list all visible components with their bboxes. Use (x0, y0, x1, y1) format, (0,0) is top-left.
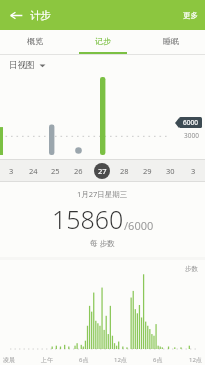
staticText: 3000 (184, 131, 199, 140)
button[interactable]: 26 (67, 159, 90, 182)
staticText: 6点 (153, 356, 163, 364)
button[interactable]: 日视图 (9, 60, 46, 71)
staticText: 日视图 (9, 60, 35, 71)
button[interactable]: 记步 (69, 30, 137, 52)
staticText: 睡眠 (163, 36, 179, 46)
button[interactable]: 概览 (0, 30, 69, 52)
staticText: 26 (74, 166, 83, 176)
staticText: 步数 (185, 265, 198, 273)
button[interactable]: 3 (0, 159, 22, 182)
staticText: 25 (51, 166, 60, 176)
staticText: 1月27日星期三 (77, 189, 128, 199)
button[interactable]: 3 (182, 159, 205, 182)
button[interactable]: 30 (159, 159, 182, 182)
button[interactable]: 29 (136, 159, 159, 182)
button[interactable]: 25 (44, 159, 67, 182)
staticText: 12点 (114, 356, 127, 364)
button[interactable]: Back (5, 4, 27, 26)
staticText: 上午 (41, 356, 53, 364)
staticText: 29 (143, 166, 152, 176)
staticText: /6000 (124, 218, 154, 233)
staticText: 6点 (79, 356, 89, 364)
button[interactable]: 睡眠 (137, 30, 205, 52)
button[interactable]: 更多 (176, 5, 205, 26)
staticText: 3 (9, 166, 14, 176)
staticText: 每 步数 (90, 238, 115, 248)
button[interactable]: 28 (113, 159, 136, 182)
button[interactable]: 27 (90, 159, 113, 182)
staticText: 概览 (27, 36, 43, 46)
staticText: 28 (120, 166, 129, 176)
staticText: 24 (29, 166, 38, 176)
staticText: 27 (98, 166, 107, 176)
staticText: 凌晨 (3, 356, 15, 364)
staticText: 12点 (189, 356, 202, 364)
staticText: 30 (166, 166, 175, 176)
staticText: 更多 (183, 11, 198, 20)
staticText: 6000 (183, 118, 198, 127)
staticText: 3 (191, 166, 196, 176)
staticText: 记步 (95, 36, 111, 46)
staticText: 计步 (30, 9, 51, 22)
button[interactable]: 24 (22, 159, 44, 182)
staticText: 15860 (52, 202, 124, 236)
